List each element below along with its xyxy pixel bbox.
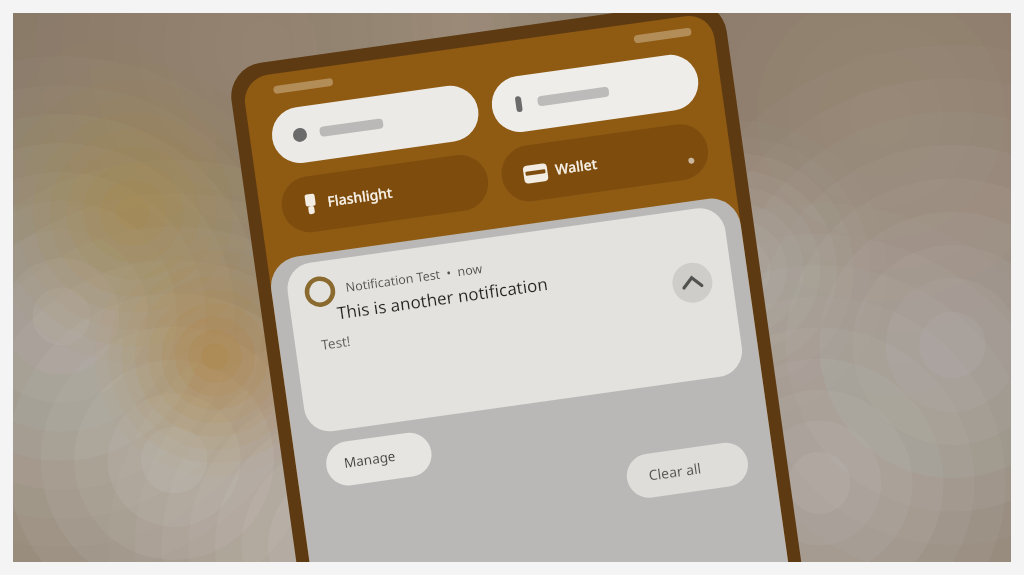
button[interactable]: Notification shade <box>0 0 1024 575</box>
